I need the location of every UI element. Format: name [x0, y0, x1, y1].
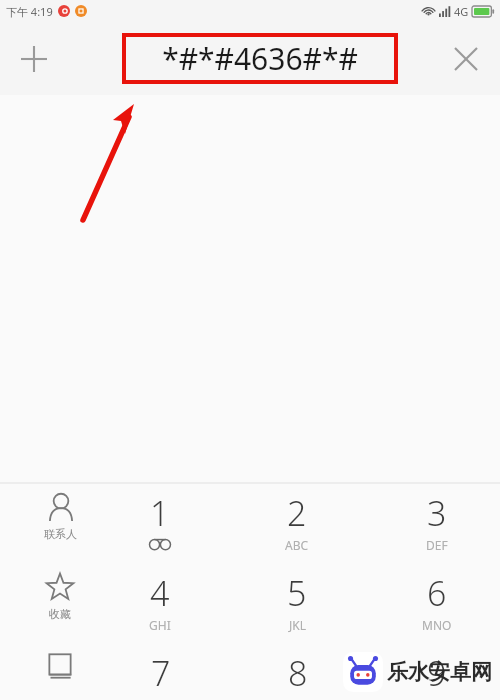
staticText: DEF: [426, 537, 448, 553]
staticText: *#*#4636#*#: [162, 38, 358, 79]
staticText: MNO: [422, 617, 452, 633]
button[interactable]: Add contact: [12, 37, 56, 81]
staticText: 乐水安卓网: [387, 659, 492, 685]
button[interactable]: 3: [387, 490, 487, 566]
staticText: ABC: [285, 537, 309, 553]
staticText: 4: [150, 570, 170, 616]
staticText: 9: [427, 650, 447, 696]
staticText: 2: [287, 490, 307, 536]
button[interactable]: 4: [110, 570, 210, 646]
button[interactable]: 8: [247, 650, 347, 700]
staticText: 5: [287, 570, 307, 616]
button[interactable]: Favorites: [15, 573, 105, 645]
button[interactable]: 2: [247, 490, 347, 566]
button[interactable]: 6: [387, 570, 487, 646]
staticText: GHI: [149, 617, 171, 633]
button[interactable]: *#*#4636#*#: [122, 33, 398, 84]
button[interactable]: 5: [247, 570, 347, 646]
button[interactable]: Call log: [15, 653, 105, 700]
staticText: 收藏: [49, 607, 71, 621]
staticText: 8: [288, 650, 308, 696]
staticText: 3: [427, 490, 447, 536]
button[interactable]: Clear: [444, 37, 488, 81]
staticText: JKL: [289, 617, 306, 633]
staticText: 6: [427, 570, 447, 616]
button[interactable]: Contacts: [15, 493, 105, 565]
staticText: 联系人: [44, 527, 77, 541]
button[interactable]: 9: [387, 650, 487, 700]
staticText: 7: [151, 650, 171, 696]
staticText: 1: [150, 490, 170, 536]
button[interactable]: 7: [110, 650, 210, 700]
staticText: 4G: [454, 4, 469, 19]
staticText: 下午 4:19: [6, 4, 53, 19]
button[interactable]: 1: [110, 490, 210, 566]
